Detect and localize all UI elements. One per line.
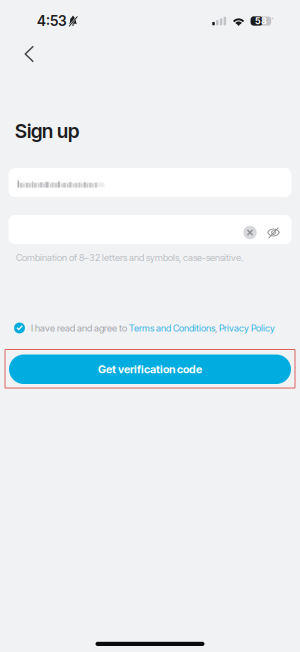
staticText: Privacy Policy [219,322,275,334]
staticText: , [215,322,219,334]
staticText: Terms and Conditions [129,322,215,334]
button[interactable]: Agree to terms [8,320,31,336]
staticText: Sign up [15,119,79,143]
staticText: I have read and agree to [31,322,129,334]
staticText: Get verification code [98,363,202,376]
button[interactable]: Show password [264,217,282,241]
staticText: Combination of 8–32 letters and symbols,… [16,252,243,263]
button[interactable]: Get verification code [5,349,295,388]
button[interactable]: Privacy Policy [219,322,275,334]
staticText: 58 [255,15,267,26]
button[interactable]: Terms and Conditions [129,322,215,334]
button[interactable]: Clear text [241,217,259,241]
button[interactable]: Back [14,39,44,69]
staticText: 4:53 [37,12,67,29]
